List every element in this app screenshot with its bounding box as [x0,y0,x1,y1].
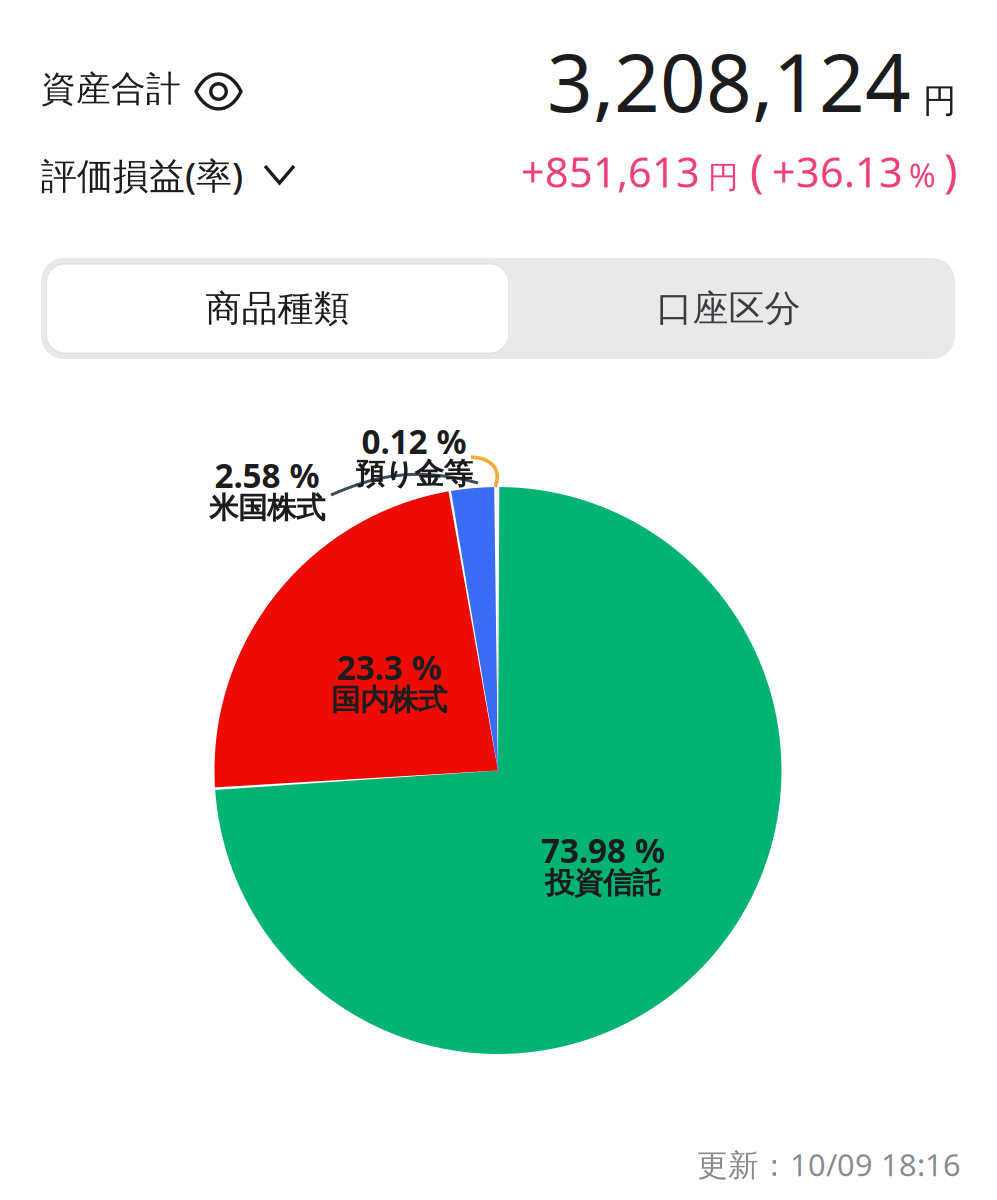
button[interactable]: 資産合計の表示を切り替え [41,62,271,116]
staticText: 商品種類 [205,286,349,331]
staticText: 円 [923,80,956,121]
staticText: ( [750,140,764,200]
staticText: 円 [708,158,739,196]
staticText: 評価損益(率) [41,151,243,199]
staticText: 3,208,124 [547,28,911,134]
staticText: 預り金等 [355,456,472,492]
staticText: ) [944,140,958,200]
button[interactable]: 商品種類 [47,264,508,353]
staticText: 2.58 % [214,453,319,497]
staticText: 国内株式 [331,682,447,718]
staticText: +851,613 [521,144,700,199]
staticText: 口座区分 [656,286,800,331]
staticText: 0.12 % [361,419,466,463]
staticText: +36.13 [772,144,903,199]
staticText: 23.3 % [336,645,441,689]
button[interactable]: 口座区分 [508,264,949,353]
staticText: % [909,154,936,196]
staticText: 更新：10/09 18:16 [697,1144,961,1185]
staticText: 米国株式 [209,490,325,526]
staticText: 73.98 % [541,828,665,872]
button[interactable]: 評価損益の表示を切り替え [41,150,341,200]
staticText: 投資信託 [545,865,661,901]
staticText: 資産合計 [41,68,181,110]
